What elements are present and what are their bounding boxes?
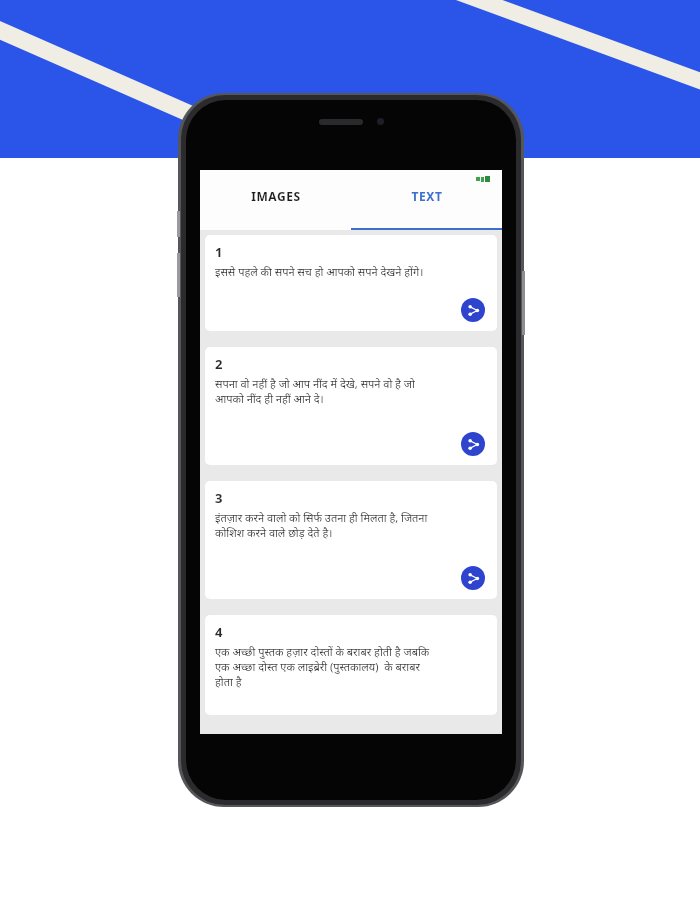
- staticText: आपको नींद ही नहीं आने दे।: [215, 391, 324, 406]
- staticText: IMAGES: [251, 188, 301, 204]
- staticText: इंतज़ार करने वालो को सिर्फ उतना ही मिलता…: [215, 510, 428, 525]
- button[interactable]: TEXT: [351, 188, 502, 204]
- button[interactable]: 3: [205, 481, 497, 599]
- staticText: एक अच्छी पुस्तक हज़ार दोस्तों के बराबर ह…: [215, 644, 430, 659]
- button[interactable]: 4: [205, 615, 497, 715]
- staticText: 1: [215, 243, 223, 261]
- staticText: सपना वो नहीं है जो आप नींद में देखे, सपन…: [215, 376, 415, 391]
- button[interactable]: Share: [461, 432, 485, 456]
- button[interactable]: 1: [205, 235, 497, 331]
- staticText: एक अच्छा दोस्त एक लाइब्रेरी (पुस्तकालय) …: [215, 659, 420, 674]
- staticText: 4: [215, 623, 223, 641]
- button[interactable]: 2: [205, 347, 497, 465]
- staticText: 2: [215, 355, 223, 373]
- button[interactable]: Share: [461, 298, 485, 322]
- staticText: 3: [215, 489, 223, 507]
- staticText: इससे पहले की सपने सच हो आपको सपने देखने …: [215, 264, 424, 279]
- button[interactable]: IMAGES: [200, 188, 351, 204]
- button[interactable]: Share: [461, 566, 485, 590]
- staticText: कोशिश करने वाले छोड़ देते है।: [215, 525, 333, 540]
- staticText: होता है: [215, 674, 242, 689]
- staticText: TEXT: [411, 188, 443, 204]
